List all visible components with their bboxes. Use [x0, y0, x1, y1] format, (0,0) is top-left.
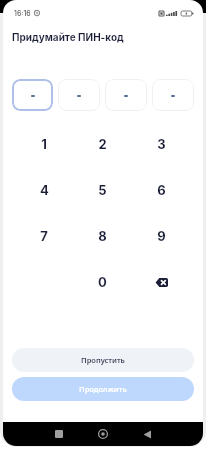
staticText: 4	[40, 182, 49, 198]
button[interactable]: 7	[15, 213, 73, 259]
staticText: 1	[41, 136, 47, 152]
button[interactable]: Пропустить	[12, 348, 194, 372]
button[interactable]: 6	[132, 167, 191, 213]
staticText: 7	[40, 228, 48, 244]
staticText: 5	[98, 182, 107, 198]
button[interactable]	[58, 79, 100, 111]
button[interactable]: 5	[73, 167, 132, 213]
button[interactable]: 0	[73, 259, 132, 305]
button[interactable]	[152, 79, 194, 111]
staticText: 6	[157, 182, 166, 198]
button[interactable]: Продолжить	[12, 377, 194, 401]
button[interactable]	[12, 79, 53, 111]
staticText: 3	[157, 136, 166, 152]
button[interactable]: 8	[73, 213, 132, 259]
staticText: 2	[98, 136, 107, 152]
staticText: Пропустить	[81, 355, 125, 365]
button[interactable]: Back	[125, 422, 169, 446]
button[interactable]: 4	[15, 167, 73, 213]
button[interactable]: 2	[73, 121, 132, 167]
button[interactable]: 3	[132, 121, 191, 167]
button[interactable]: 9	[132, 213, 191, 259]
button[interactable]: 1	[15, 121, 73, 167]
staticText: 0	[98, 274, 107, 290]
staticText: Продолжить	[79, 384, 127, 394]
button[interactable]: Удалить	[132, 259, 191, 305]
other: Удалить	[155, 278, 168, 287]
staticText: 16:16	[14, 9, 31, 17]
button[interactable]: Recents	[37, 422, 81, 446]
staticText: 8	[98, 228, 107, 244]
button[interactable]	[105, 79, 147, 111]
staticText: Придумайте ПИН-код	[12, 31, 124, 43]
staticText: 9	[157, 228, 166, 244]
button[interactable]: Home	[81, 422, 125, 446]
